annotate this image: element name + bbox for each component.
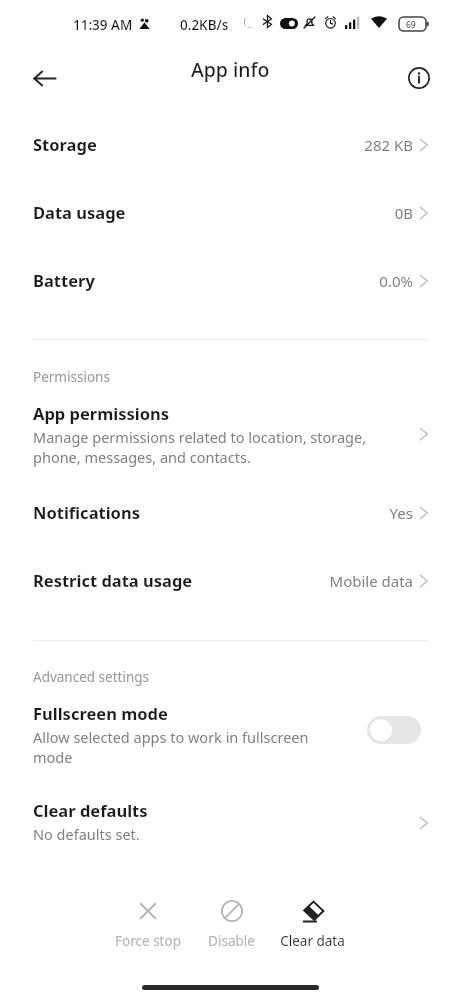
staticText: Force stop <box>115 932 181 950</box>
staticText: Battery <box>33 269 95 291</box>
staticText: Disable <box>208 932 255 950</box>
staticText: Clear data <box>280 932 345 950</box>
button[interactable]: Fullscreen mode toggle <box>367 716 421 744</box>
staticText: Clear defaults <box>33 799 148 821</box>
staticText: 0B <box>394 203 413 223</box>
button[interactable]: Battery <box>0 247 461 315</box>
button[interactable]: Storage <box>0 111 461 179</box>
staticText: 69 <box>406 19 416 31</box>
button[interactable]: Fullscreen mode <box>0 694 461 780</box>
staticText: Restrict data usage <box>33 569 193 591</box>
button[interactable]: Restrict data usage <box>0 547 461 615</box>
staticText: Notifications <box>33 501 140 523</box>
staticText: Yes <box>389 503 413 523</box>
button[interactable]: Clear data <box>269 898 355 960</box>
staticText: 0.2KB/s <box>180 16 229 34</box>
staticText: Fullscreen mode <box>33 702 168 724</box>
button[interactable]: Notifications <box>0 479 461 547</box>
staticText: 282 KB <box>364 135 413 155</box>
staticText: App info <box>191 56 270 83</box>
staticText: Mobile data <box>329 571 413 591</box>
button[interactable]: Data usage <box>0 179 461 247</box>
staticText: App permissions <box>33 402 170 424</box>
button[interactable]: Force stop <box>105 898 191 960</box>
button[interactable]: App details <box>393 52 445 104</box>
button[interactable]: Clear defaults <box>0 791 461 853</box>
staticText: 0.0% <box>379 271 413 291</box>
staticText: Data usage <box>33 201 126 223</box>
staticText: 11:39 AM <box>73 16 133 34</box>
staticText: Manage permissions related to location, … <box>33 427 367 467</box>
button[interactable]: App permissions <box>0 394 461 476</box>
staticText: Advanced settings <box>33 668 150 686</box>
staticText: Allow selected apps to work in fullscree… <box>33 727 309 767</box>
staticText: Storage <box>33 133 97 155</box>
staticText: No defaults set. <box>33 824 140 844</box>
staticText: Permissions <box>33 368 110 386</box>
button[interactable]: Back <box>18 52 70 104</box>
button[interactable]: Disable <box>188 898 274 960</box>
